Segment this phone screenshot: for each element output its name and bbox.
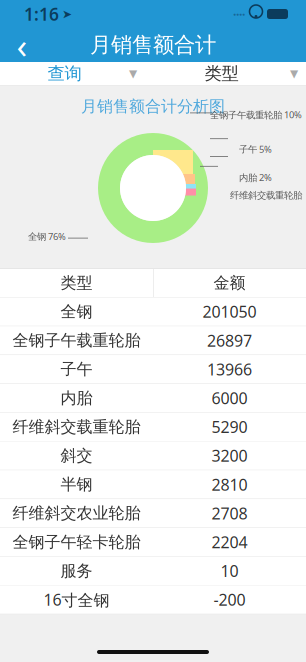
staticText: 6000 (211, 387, 247, 409)
staticText: 26897 (207, 330, 252, 351)
staticText: 类型 (204, 63, 238, 84)
staticText: 查询 (47, 63, 81, 84)
staticText: 全钢子午轻卡轮胎 (12, 532, 140, 552)
staticText: ➤ (62, 7, 72, 21)
staticText: 5290 (211, 416, 247, 437)
staticText: 201050 (202, 301, 256, 322)
staticText: 3200 (211, 445, 247, 466)
staticText: 月销售额合计 (90, 32, 216, 58)
staticText: 服务 (60, 561, 92, 581)
staticText: 内胎 2% (239, 171, 272, 184)
staticText: 10 (220, 560, 238, 581)
staticText: 内胎 (60, 388, 92, 408)
staticText: 全钢子午载重轮胎 10% (210, 108, 302, 121)
staticText: 全钢子午载重轮胎 (12, 331, 140, 350)
staticText: 纤维斜交载重轮胎 (12, 417, 140, 437)
staticText: 2204 (211, 531, 247, 553)
staticText: 斜交 (60, 446, 92, 465)
staticText: 纤维斜交载重轮胎 (230, 190, 302, 201)
staticText: 13966 (207, 359, 252, 380)
staticText: -200 (213, 589, 245, 610)
staticText: 类型 (60, 273, 92, 293)
staticText: 全钢 (60, 302, 92, 321)
staticText: 1:16 (24, 2, 59, 25)
staticText: 金额 (213, 273, 245, 293)
staticText: 纤维斜交农业轮胎 (12, 503, 140, 523)
staticText: ▼ (290, 67, 298, 79)
staticText: 2810 (211, 474, 247, 495)
staticText: 月销售额合计分析图 (81, 96, 225, 116)
staticText: 子午 (60, 359, 92, 379)
staticText: ▼ (129, 67, 137, 79)
staticText: 2708 (211, 503, 247, 524)
button[interactable]: Back (0, 28, 44, 62)
button[interactable]: 类型 (153, 62, 306, 85)
staticText: ‹ (16, 22, 27, 68)
button[interactable]: 查询 (0, 62, 153, 85)
staticText: 半钢 (60, 475, 92, 494)
staticText: ···· (233, 6, 245, 22)
staticText: 全钢 76% (28, 230, 66, 242)
staticText: 子午 5% (239, 143, 272, 155)
staticText: 16寸全钢 (43, 589, 109, 610)
